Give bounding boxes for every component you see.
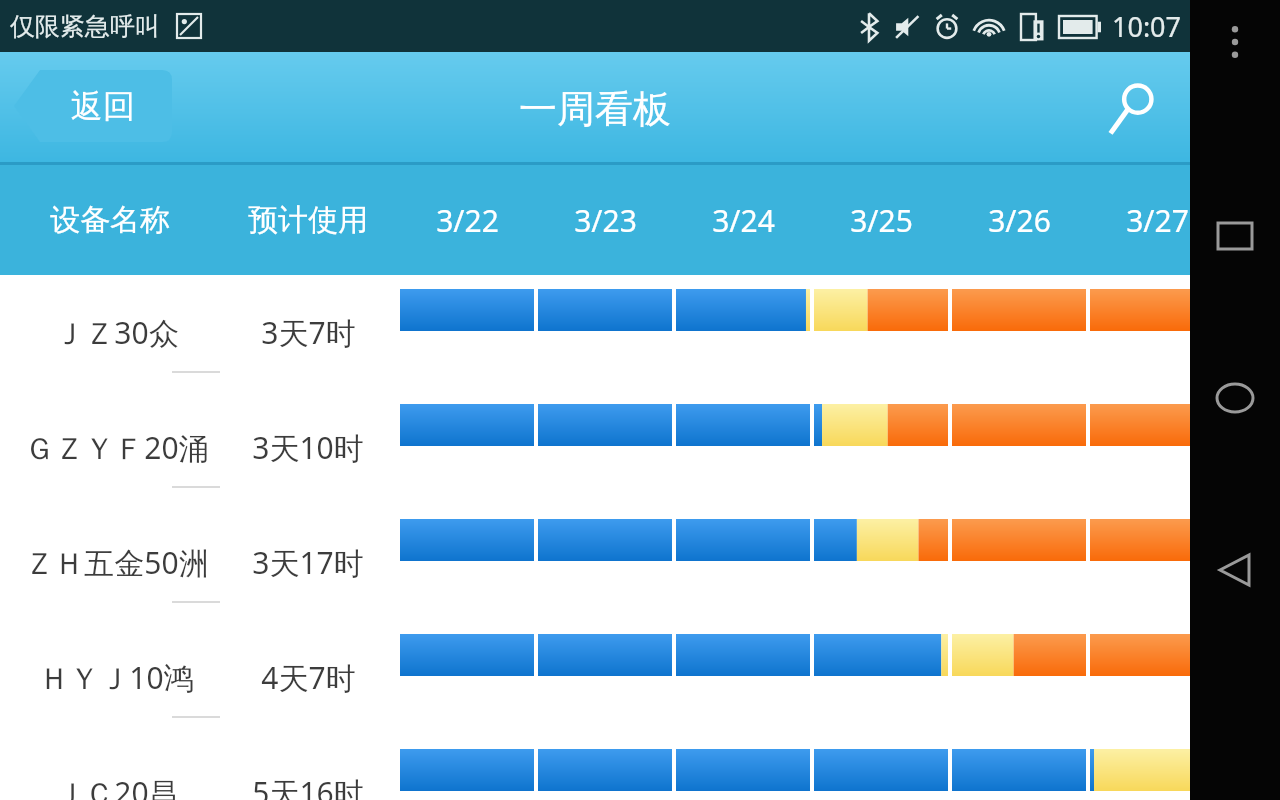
staticText: ＨＹＪ10鸿 (39, 657, 194, 698)
staticText: ＺＨ五金50洲 (24, 542, 209, 583)
staticText: 3/22 (436, 200, 499, 241)
staticText: 3天10时 (252, 427, 364, 468)
staticText: 3天17时 (252, 542, 364, 583)
staticText: 4天7时 (261, 657, 356, 698)
button[interactable]: ＺＨ五金50洲 (0, 505, 1190, 620)
button[interactable]: ＨＹＪ10鸿 (0, 620, 1190, 735)
staticText: ＪＣ20昌 (54, 772, 179, 800)
staticText: ＧＺＹＦ20涌 (24, 427, 209, 468)
staticText: 返回 (71, 86, 135, 126)
staticText: 5天16时 (252, 772, 364, 800)
staticText: 3/27 (1126, 200, 1189, 241)
button[interactable]: ＧＺＹＦ20涌 (0, 390, 1190, 505)
button[interactable]: Search (1094, 71, 1170, 147)
staticText: 3天7时 (261, 312, 356, 353)
button[interactable]: Back (1195, 530, 1275, 610)
staticText: ＪＺ30众 (54, 312, 179, 353)
staticText: 3/23 (574, 200, 637, 241)
button[interactable]: ＪＣ20昌 (0, 735, 1190, 800)
staticText: 预计使用 (248, 201, 368, 239)
button[interactable]: ＪＺ30众 (0, 275, 1190, 390)
staticText: 3/26 (988, 200, 1051, 241)
staticText: 3/24 (712, 200, 775, 241)
button[interactable]: Home (1195, 358, 1275, 438)
button[interactable]: Recent apps (1195, 196, 1275, 276)
staticText: 设备名称 (50, 201, 170, 239)
staticText: 仅限紧急呼叫 (10, 11, 160, 42)
button[interactable]: More options (1205, 12, 1265, 72)
staticText: 一周看板 (519, 85, 671, 133)
button[interactable]: 返回 (14, 70, 172, 142)
staticText: 3/25 (850, 200, 913, 241)
staticText: 10:07 (1112, 8, 1182, 45)
